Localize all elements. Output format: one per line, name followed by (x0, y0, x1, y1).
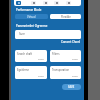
button[interactable]: SAVE (62, 84, 81, 90)
staticText: Filters (52, 52, 60, 56)
button[interactable]: Sure (15, 30, 81, 39)
button[interactable]: Transporation (50, 66, 81, 79)
staticText: Transporation (52, 68, 70, 72)
staticText: cm01 (38, 57, 45, 60)
button[interactable]: Egzitleme (15, 66, 47, 79)
button[interactable]: Effects (54, 1, 59, 5)
staticText: Virtual (27, 15, 36, 19)
staticText: cm01 (72, 74, 79, 77)
button[interactable]: Settings (66, 1, 71, 5)
staticText: Sure (19, 32, 25, 36)
staticText: Search shaft (17, 52, 33, 56)
button[interactable]: Search shaft (15, 50, 47, 62)
staticText: cm01 (72, 57, 79, 60)
staticText: Concert Chord (61, 40, 81, 44)
button[interactable]: Keyboard (16, 1, 21, 5)
button[interactable]: Virtual (15, 14, 48, 19)
button[interactable]: Styles (31, 1, 36, 5)
button[interactable]: Flexible (50, 14, 81, 19)
staticText: Performance Mode (16, 8, 42, 12)
button[interactable]: Sounds (43, 1, 48, 5)
staticText: Flexible (61, 15, 71, 19)
staticText: Parametreleri Ogrenme (16, 24, 48, 28)
staticText: Egzitleme (17, 68, 29, 72)
staticText: cm01 (38, 74, 45, 77)
staticText: SAVE (68, 85, 75, 89)
button[interactable]: Filters (50, 50, 81, 62)
